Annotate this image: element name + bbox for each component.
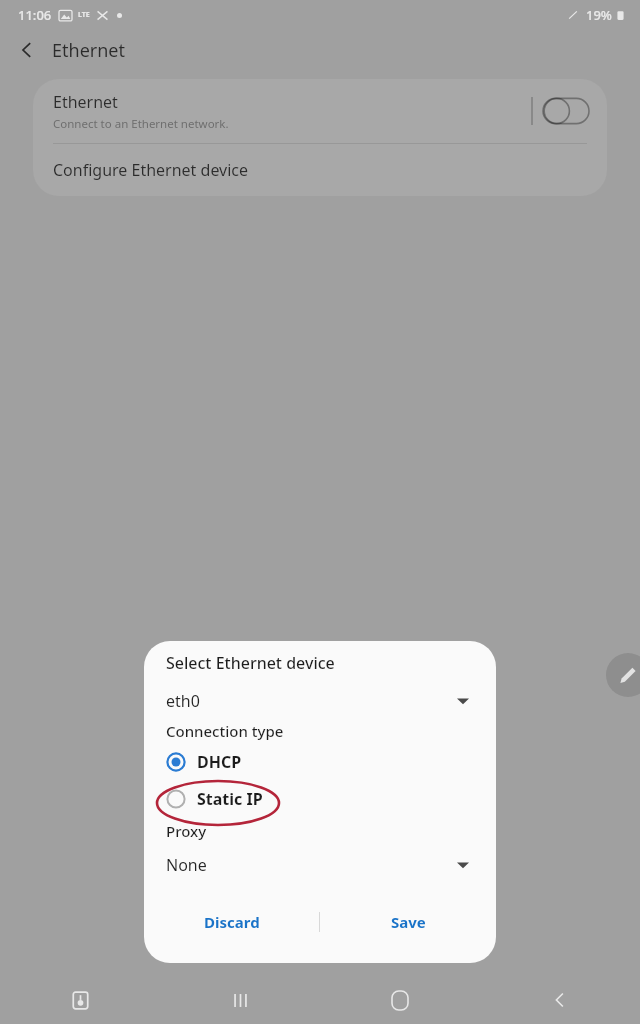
staticText: None: [166, 854, 457, 876]
staticText: Connect to an Ethernet network.: [53, 116, 229, 132]
button[interactable]: Back: [8, 31, 46, 69]
button[interactable]: DHCP: [144, 749, 496, 775]
staticText: Static IP: [197, 788, 263, 810]
staticText: 11:06: [18, 6, 52, 24]
button[interactable]: eth0: [144, 686, 496, 716]
staticText: Ethernet: [53, 91, 118, 113]
button[interactable]: Ethernet toggle: [543, 96, 589, 126]
button[interactable]: Save: [320, 895, 496, 949]
button[interactable]: Edit: [606, 653, 640, 697]
staticText: Configure Ethernet device: [53, 159, 249, 181]
staticText: Save: [391, 912, 426, 932]
button[interactable]: Static IP: [144, 786, 496, 812]
button[interactable]: Recents: [160, 976, 320, 1024]
staticText: DHCP: [197, 751, 242, 773]
button[interactable]: Back: [480, 976, 640, 1024]
staticText: Proxy: [166, 821, 207, 841]
button[interactable]: Screenshot: [0, 976, 160, 1024]
button[interactable]: None: [144, 851, 496, 879]
staticText: eth0: [166, 690, 457, 712]
staticText: Discard: [204, 912, 260, 932]
staticText: LTE: [78, 10, 90, 20]
button[interactable]: Configure Ethernet device: [33, 144, 607, 196]
button[interactable]: Ethernet: [33, 79, 607, 143]
staticText: Connection type: [166, 721, 284, 741]
button[interactable]: Discard: [144, 895, 319, 949]
staticText: Ethernet: [52, 38, 125, 63]
button[interactable]: Home: [320, 976, 480, 1024]
staticText: Select Ethernet device: [166, 652, 335, 674]
staticText: 19%: [586, 6, 612, 24]
